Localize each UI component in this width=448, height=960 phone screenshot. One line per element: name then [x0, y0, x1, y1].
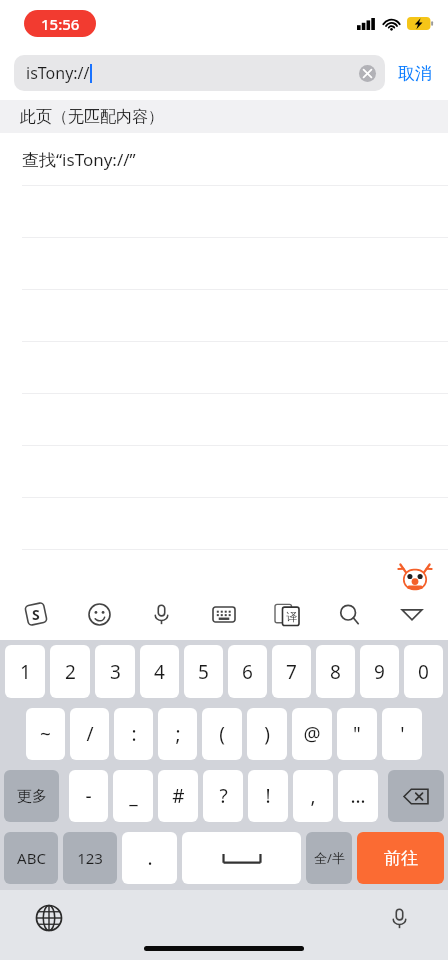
staticText: ! [265, 783, 271, 809]
staticText: 3 [110, 659, 121, 685]
staticText: @ [303, 721, 321, 747]
staticText: ( [219, 721, 225, 747]
staticText: 全/半 [314, 849, 345, 867]
button[interactable]: 7 [272, 645, 311, 698]
staticText: 15:56 [41, 14, 80, 34]
staticText: 7 [286, 659, 297, 685]
staticText: ? [219, 783, 228, 809]
button[interactable]: " [337, 708, 377, 760]
button[interactable]: 更多 [4, 770, 59, 822]
staticText: 此页（无匹配内容） [20, 107, 164, 127]
button[interactable]: 取消 [385, 63, 434, 84]
staticText: 6 [242, 659, 253, 685]
staticText: 更多 [17, 787, 47, 806]
staticText: 9 [374, 659, 385, 685]
staticText: 前往 [384, 848, 418, 869]
button[interactable]: 123 [63, 832, 117, 884]
button[interactable]: 3 [95, 645, 135, 698]
staticText: . [147, 845, 153, 871]
button[interactable]: ? [203, 770, 243, 822]
button[interactable]: # [158, 770, 198, 822]
button[interactable]: 6 [228, 645, 267, 698]
button[interactable]: ( [202, 708, 242, 760]
button[interactable]: 4 [140, 645, 179, 698]
button[interactable]: Voice input [141, 594, 181, 634]
button[interactable]: : [114, 708, 153, 760]
button[interactable]: Hide keyboard [392, 594, 432, 634]
button[interactable]: ABC [4, 832, 58, 884]
button[interactable]: ~ [26, 708, 65, 760]
button[interactable]: 9 [360, 645, 399, 698]
staticText: ) [264, 721, 270, 747]
button[interactable]: Change keyboard language [28, 897, 70, 939]
button[interactable]: ! [248, 770, 288, 822]
button[interactable]: - [69, 770, 108, 822]
staticText: " [353, 721, 361, 747]
button[interactable]: isTony:// [14, 55, 385, 91]
button[interactable]: 8 [316, 645, 355, 698]
staticText: 取消 [398, 63, 432, 84]
staticText: , [310, 783, 316, 809]
button[interactable]: @ [292, 708, 332, 760]
staticText: 4 [154, 659, 165, 685]
button[interactable]: Backspace [388, 770, 444, 822]
button[interactable]: … [338, 770, 378, 822]
staticText: 2 [65, 659, 76, 685]
staticText: : [131, 721, 137, 747]
button[interactable]: Space [182, 832, 301, 884]
staticText: # [172, 783, 185, 809]
button[interactable]: ; [158, 708, 197, 760]
button[interactable]: Keyboard layout [204, 594, 244, 634]
button[interactable]: _ [113, 770, 153, 822]
staticText: … [350, 783, 366, 809]
staticText: ~ [40, 721, 51, 747]
staticText: _ [129, 783, 138, 809]
staticText: 123 [77, 848, 103, 868]
button[interactable]: 全/半 [306, 832, 352, 884]
button[interactable]: 0 [404, 645, 443, 698]
button[interactable]: Emoji [79, 594, 119, 634]
staticText: ; [175, 721, 181, 747]
staticText: 译 [286, 610, 297, 624]
button[interactable]: . [122, 832, 177, 884]
button[interactable]: 1 [5, 645, 45, 698]
button[interactable]: ) [247, 708, 287, 760]
staticText: 8 [330, 659, 341, 685]
button[interactable]: 2 [50, 645, 90, 698]
button[interactable]: ' [382, 708, 422, 760]
button[interactable]: , [293, 770, 333, 822]
staticText: ABC [17, 848, 46, 868]
staticText: 0 [418, 659, 429, 685]
button[interactable]: Clear text [357, 63, 377, 83]
button[interactable]: Translate [267, 594, 307, 634]
staticText: 查找“isTony://” [22, 148, 136, 171]
button[interactable]: Search [329, 594, 369, 634]
staticText: ' [400, 721, 405, 747]
staticText: isTony:// [26, 62, 90, 84]
staticText: 1 [20, 659, 31, 685]
button[interactable]: 查找“isTony://” [0, 133, 448, 185]
staticText: S [32, 605, 40, 624]
staticText: / [86, 721, 94, 747]
button[interactable]: / [70, 708, 109, 760]
staticText: - [85, 783, 92, 809]
staticText: 5 [198, 659, 209, 685]
button[interactable]: Dictation [378, 897, 420, 939]
button[interactable]: 5 [184, 645, 223, 698]
button[interactable]: 前往 [357, 832, 444, 884]
button[interactable]: Sogou input method [16, 594, 56, 634]
